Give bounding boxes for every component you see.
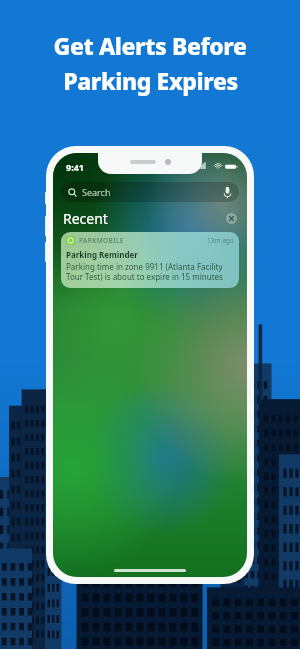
button[interactable]: Search [61, 182, 239, 202]
staticText: 9:41 [66, 161, 84, 173]
button[interactable]: PARKMOBILE [61, 232, 239, 288]
staticText: Parking time in zone 9911 (Atlanta Facil… [66, 261, 234, 282]
staticText: Search [82, 186, 111, 198]
button[interactable]: Clear recent notifications [226, 213, 237, 224]
staticText: Get Alerts Before [53, 30, 247, 61]
staticText: Parking Expires [63, 65, 238, 96]
staticText: 13m ago [207, 236, 234, 245]
staticText: Recent [63, 209, 108, 228]
staticText: PARKMOBILE [79, 236, 124, 245]
staticText: Parking Reminder [66, 249, 138, 260]
